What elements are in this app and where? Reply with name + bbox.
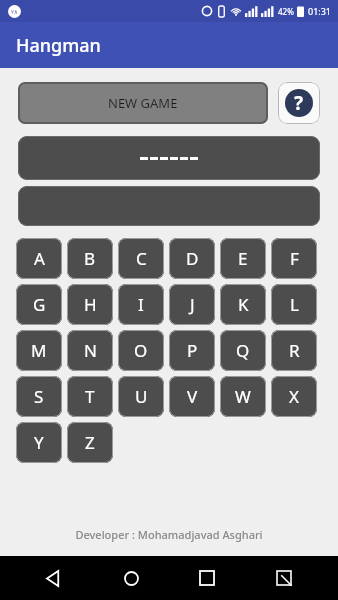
button[interactable]: P	[169, 330, 215, 371]
button[interactable]: R	[271, 330, 317, 371]
button[interactable]: L	[271, 284, 317, 325]
staticText: S	[34, 385, 44, 408]
button[interactable]: I	[118, 284, 164, 325]
staticText: D	[186, 247, 199, 270]
button[interactable]: Recent apps	[185, 556, 229, 600]
staticText: F	[290, 247, 299, 270]
button[interactable]: N	[67, 330, 113, 371]
staticText: L	[290, 293, 299, 316]
button[interactable]: U	[118, 376, 164, 417]
button[interactable]: A	[16, 238, 62, 279]
staticText: R	[289, 339, 300, 362]
staticText: A	[34, 247, 45, 270]
staticText: M	[31, 339, 47, 362]
button[interactable]: G	[16, 284, 62, 325]
staticText: NEW GAME	[108, 94, 178, 112]
button[interactable]: V	[169, 376, 215, 417]
button[interactable]: F	[271, 238, 317, 279]
button[interactable]: NEW GAME	[18, 82, 268, 124]
button[interactable]: O	[118, 330, 164, 371]
button[interactable]: H	[67, 284, 113, 325]
button[interactable]: S	[16, 376, 62, 417]
button[interactable]: Back	[32, 556, 76, 600]
staticText: W	[235, 385, 251, 408]
staticText: J	[190, 293, 195, 316]
button[interactable]: M	[16, 330, 62, 371]
button[interactable]: Q	[220, 330, 266, 371]
staticText: Hangman	[16, 33, 101, 58]
button[interactable]: B	[67, 238, 113, 279]
staticText: T	[85, 385, 95, 408]
button[interactable]: D	[169, 238, 215, 279]
staticText: K	[238, 293, 249, 316]
staticText: Developer : Mohamadjavad Asghari	[0, 527, 338, 542]
staticText: 42%	[278, 6, 294, 17]
button[interactable]: J	[169, 284, 215, 325]
button[interactable]: Z	[67, 422, 113, 463]
staticText: 01:31	[308, 5, 332, 17]
staticText: Z	[85, 431, 95, 454]
staticText: E	[238, 247, 248, 270]
button[interactable]: Home	[109, 556, 153, 600]
staticText: X	[289, 385, 299, 408]
button[interactable]: Help	[278, 82, 320, 124]
button[interactable]: T	[67, 376, 113, 417]
staticText: ۲۸	[11, 8, 18, 15]
staticText: U	[135, 385, 148, 408]
staticText: Y	[34, 431, 44, 454]
staticText: C	[136, 247, 147, 270]
button[interactable]: E	[220, 238, 266, 279]
button[interactable]: X	[271, 376, 317, 417]
button[interactable]: C	[118, 238, 164, 279]
staticText: ?	[294, 90, 304, 116]
button[interactable]: Screenshot	[262, 556, 306, 600]
staticText: Q	[236, 339, 250, 362]
button[interactable]: K	[220, 284, 266, 325]
staticText: V	[187, 385, 198, 408]
staticText: N	[84, 339, 97, 362]
staticText: G	[33, 293, 46, 316]
staticText: I	[138, 293, 144, 316]
button[interactable]: W	[220, 376, 266, 417]
staticText: B	[84, 247, 96, 270]
button[interactable]: Y	[16, 422, 62, 463]
staticText: P	[187, 339, 198, 362]
staticText: O	[134, 339, 148, 362]
staticText: H	[84, 293, 97, 316]
